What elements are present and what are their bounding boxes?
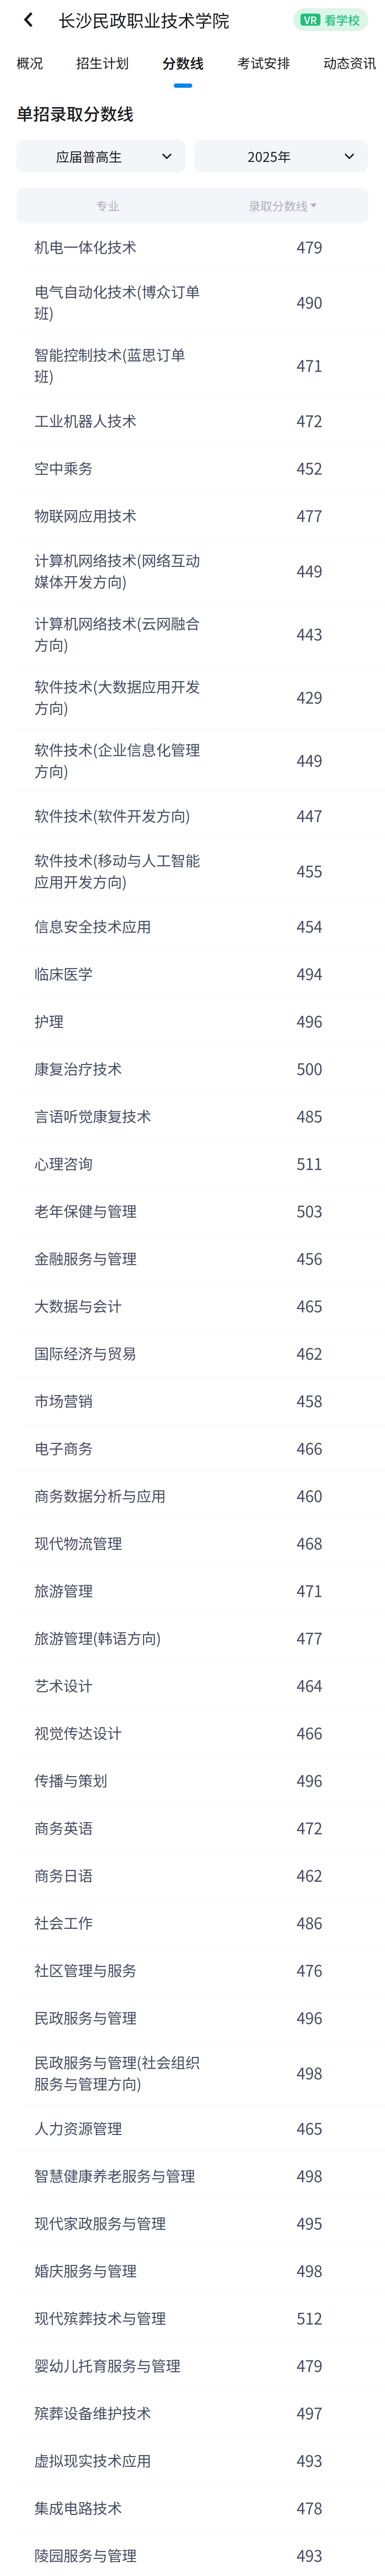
button[interactable]: 智慧健康养老服务与管理 xyxy=(0,2152,385,2199)
button[interactable]: 空中乘务 xyxy=(0,444,385,492)
button[interactable]: 殡葬设备维护技术 xyxy=(0,2389,385,2436)
button[interactable]: 旅游管理(韩语方向) xyxy=(0,1614,385,1662)
button[interactable]: 软件技术(移动与人工智能 应用开发方向) xyxy=(0,839,385,902)
button[interactable]: 分数线 xyxy=(162,39,204,93)
button[interactable]: 陵园服务与管理 xyxy=(0,2531,385,2576)
staticText: 495 xyxy=(297,2211,322,2234)
staticText: 490 xyxy=(297,290,322,313)
button[interactable]: 现代家政服务与管理 xyxy=(0,2199,385,2247)
button[interactable]: 心理咨询 xyxy=(0,1140,385,1187)
staticText: 现代物流管理 xyxy=(34,1532,122,1553)
staticText: 金融服务与管理 xyxy=(34,1247,137,1269)
button[interactable]: 视觉传达设计 xyxy=(0,1709,385,1756)
button[interactable]: 金融服务与管理 xyxy=(0,1234,385,1282)
staticText: 472 xyxy=(297,409,322,432)
staticText: 社区管理与服务 xyxy=(34,1959,137,1981)
button[interactable]: 电气自动化技术(博众订单 班) xyxy=(0,270,385,334)
button[interactable]: 软件技术(企业信息化管理 方向) xyxy=(0,729,385,792)
staticText: 智能控制技术(蓝思订单 班) xyxy=(34,344,185,386)
button[interactable]: 计算机网络技术(网络互动 媒体开发方向) xyxy=(0,539,385,602)
staticText: 空中乘务 xyxy=(34,457,93,478)
staticText: 471 xyxy=(297,1579,322,1602)
button[interactable]: 软件技术(软件开发方向) xyxy=(0,792,385,839)
button[interactable]: 集成电路技术 xyxy=(0,2484,385,2531)
staticText: 计算机网络技术(网络互动 媒体开发方向) xyxy=(34,549,200,592)
staticText: 511 xyxy=(297,1152,322,1174)
staticText: 商务英语 xyxy=(34,1817,93,1838)
staticText: 国际经济与贸易 xyxy=(34,1342,137,1364)
button[interactable]: 临床医学 xyxy=(0,950,385,997)
staticText: 单招录取分数线 xyxy=(16,101,134,125)
button[interactable]: 民政服务与管理 xyxy=(0,1994,385,2041)
staticText: 民政服务与管理 xyxy=(34,2007,137,2028)
button[interactable]: 大数据与会计 xyxy=(0,1282,385,1329)
button[interactable]: 婴幼儿托育服务与管理 xyxy=(0,2342,385,2389)
staticText: 录取分数线 xyxy=(249,197,307,214)
staticText: 498 xyxy=(297,2061,322,2084)
button[interactable]: 动态资讯 xyxy=(323,39,376,93)
staticText: 软件技术(大数据应用开发 方向) xyxy=(34,675,200,718)
button[interactable]: 护理 xyxy=(0,997,385,1045)
button[interactable]: 返回 xyxy=(9,0,48,39)
staticText: 498 xyxy=(297,2259,322,2282)
staticText: 503 xyxy=(297,1199,322,1222)
staticText: 大数据与会计 xyxy=(34,1295,122,1316)
staticText: 应届普高生 xyxy=(56,146,122,166)
staticText: 艺术设计 xyxy=(34,1674,93,1696)
staticText: 旅游管理 xyxy=(34,1580,93,1601)
staticText: 智慧健康养老服务与管理 xyxy=(34,2165,195,2186)
button[interactable]: 机电一体化技术 xyxy=(0,223,385,270)
button[interactable]: 信息安全技术应用 xyxy=(0,902,385,950)
button[interactable]: 2025年 xyxy=(194,140,368,172)
staticText: 市场营销 xyxy=(34,1390,93,1411)
button[interactable]: 市场营销 xyxy=(0,1377,385,1424)
staticText: 479 xyxy=(297,235,322,258)
button[interactable]: 现代物流管理 xyxy=(0,1519,385,1567)
button[interactable]: 社会工作 xyxy=(0,1899,385,1946)
button[interactable]: 现代殡葬技术与管理 xyxy=(0,2294,385,2342)
button[interactable]: 旅游管理 xyxy=(0,1567,385,1614)
staticText: 497 xyxy=(297,2401,322,2424)
staticText: 496 xyxy=(297,2006,322,2029)
staticText: 陵园服务与管理 xyxy=(34,2544,137,2566)
staticText: 462 xyxy=(297,1342,322,1364)
button[interactable]: 电子商务 xyxy=(0,1424,385,1472)
button[interactable]: 软件技术(大数据应用开发 方向) xyxy=(0,665,385,729)
button[interactable]: 婚庆服务与管理 xyxy=(0,2247,385,2294)
button[interactable]: 国际经济与贸易 xyxy=(0,1329,385,1377)
button[interactable]: 商务数据分析与应用 xyxy=(0,1472,385,1519)
button[interactable]: 艺术设计 xyxy=(0,1662,385,1709)
button[interactable]: 概况 xyxy=(16,39,43,93)
button[interactable]: 民政服务与管理(社会组织 服务与管理方向) xyxy=(0,2041,385,2104)
button[interactable]: 招生计划 xyxy=(76,39,129,93)
staticText: 软件技术(软件开发方向) xyxy=(34,805,190,826)
button[interactable]: 物联网应用技术 xyxy=(0,492,385,539)
staticText: 软件技术(移动与人工智能 应用开发方向) xyxy=(34,849,200,892)
button[interactable]: 传播与策划 xyxy=(0,1756,385,1804)
staticText: 456 xyxy=(297,1247,322,1269)
button[interactable]: VR xyxy=(293,8,368,31)
staticText: 496 xyxy=(297,1009,322,1032)
button[interactable]: 智能控制技术(蓝思订单 班) xyxy=(0,334,385,397)
button[interactable]: 社区管理与服务 xyxy=(0,1946,385,1994)
button[interactable]: 商务日语 xyxy=(0,1851,385,1899)
button[interactable]: 老年保健与管理 xyxy=(0,1187,385,1234)
button[interactable]: 计算机网络技术(云网融合 方向) xyxy=(0,602,385,665)
button[interactable]: 应届普高生 xyxy=(16,140,185,172)
staticText: 专业 xyxy=(96,197,119,214)
staticText: 466 xyxy=(297,1721,322,1744)
button[interactable]: 人力资源管理 xyxy=(0,2104,385,2152)
button[interactable]: 言语听觉康复技术 xyxy=(0,1092,385,1140)
staticText: 传播与策划 xyxy=(34,1769,107,1791)
button[interactable]: 商务英语 xyxy=(0,1804,385,1851)
staticText: 493 xyxy=(297,2449,322,2471)
button[interactable]: 工业机器人技术 xyxy=(0,397,385,444)
staticText: 477 xyxy=(297,504,322,527)
staticText: 449 xyxy=(297,749,322,771)
staticText: 招生计划 xyxy=(76,53,129,72)
button[interactable]: 虚拟现实技术应用 xyxy=(0,2436,385,2484)
button[interactable]: 考试安排 xyxy=(237,39,290,93)
staticText: 449 xyxy=(297,559,322,582)
staticText: 物联网应用技术 xyxy=(34,505,137,526)
button[interactable]: 康复治疗技术 xyxy=(0,1045,385,1092)
